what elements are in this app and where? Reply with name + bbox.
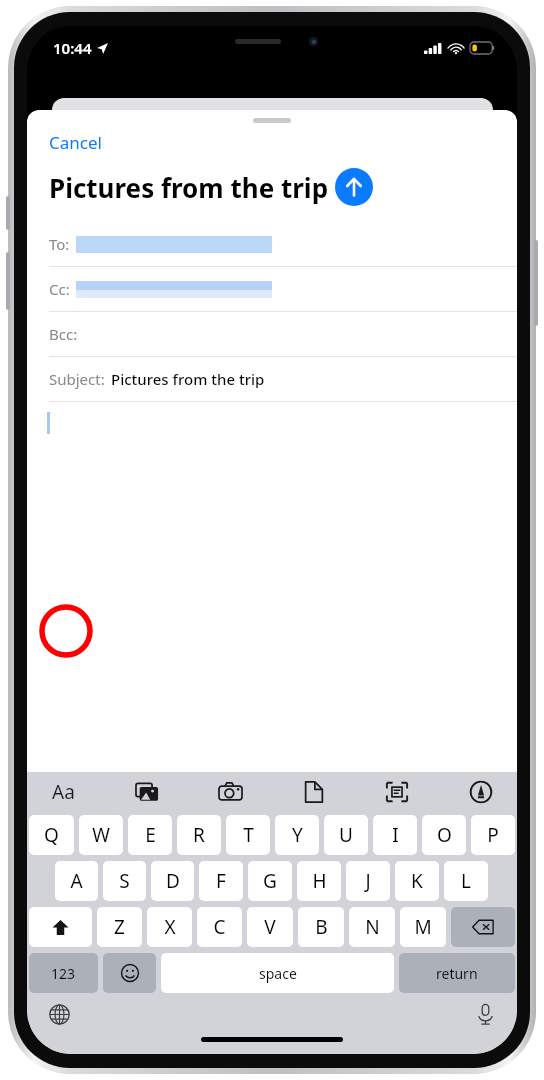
button[interactable]: Photo library	[121, 773, 173, 811]
button[interactable]: space	[161, 953, 394, 993]
staticText: V	[264, 914, 276, 940]
button[interactable]: Markup	[455, 773, 507, 811]
button[interactable]: H	[297, 861, 341, 901]
staticText: Subject:	[49, 369, 105, 389]
staticText: space	[259, 964, 297, 983]
button[interactable]: P	[471, 815, 515, 855]
staticText: Z	[114, 914, 125, 940]
staticText: X	[164, 914, 176, 940]
button[interactable]: Q	[29, 815, 74, 855]
button[interactable]: I	[373, 815, 417, 855]
staticText: L	[461, 868, 471, 894]
staticText: Y	[292, 822, 303, 848]
button[interactable]: B	[298, 907, 344, 947]
button[interactable]: Y	[275, 815, 319, 855]
button[interactable]: R	[177, 815, 221, 855]
button[interactable]: Emoji	[103, 953, 156, 993]
button[interactable]: To:	[27, 222, 517, 267]
staticText: G	[263, 868, 277, 894]
staticText: P	[487, 822, 499, 848]
button[interactable]: D	[151, 861, 194, 901]
button[interactable]: Shift	[29, 907, 92, 947]
button[interactable]: E	[128, 815, 172, 855]
button[interactable]: K	[395, 861, 439, 901]
staticText: 10:44	[53, 38, 92, 58]
staticText: U	[339, 822, 353, 848]
staticText: J	[365, 868, 371, 894]
staticText: 123	[51, 964, 76, 983]
button[interactable]: Text format	[37, 773, 89, 811]
button[interactable]: F	[199, 861, 243, 901]
staticText: B	[315, 914, 328, 940]
staticText: Q	[44, 822, 59, 848]
staticText: D	[166, 868, 180, 894]
button[interactable]: N	[349, 907, 395, 947]
staticText: W	[92, 822, 110, 848]
staticText: R	[193, 822, 205, 848]
button[interactable]: A	[55, 861, 98, 901]
button[interactable]: X	[147, 907, 192, 947]
button[interactable]: return	[399, 953, 515, 993]
button[interactable]: Cancel	[27, 123, 124, 158]
button[interactable]: Send	[335, 168, 373, 206]
button[interactable]: T	[226, 815, 270, 855]
button[interactable]: Camera	[204, 773, 256, 811]
staticText: A	[70, 868, 83, 894]
button[interactable]: S	[103, 861, 146, 901]
button[interactable]	[27, 402, 517, 772]
button[interactable]: Bcc:	[27, 312, 517, 357]
button[interactable]: L	[444, 861, 488, 901]
staticText: return	[436, 964, 478, 983]
button[interactable]: W	[79, 815, 123, 855]
staticText: Cc:	[49, 279, 70, 299]
button[interactable]: J	[346, 861, 390, 901]
staticText: T	[243, 822, 254, 848]
button[interactable]: Subject:	[27, 357, 517, 402]
button[interactable]: M	[400, 907, 446, 947]
staticText: I	[392, 822, 399, 848]
staticText: Aa	[52, 779, 75, 805]
button[interactable]: Dictate	[469, 998, 501, 1030]
staticText: H	[312, 868, 327, 894]
staticText: M	[414, 914, 432, 940]
staticText: N	[365, 914, 380, 940]
button[interactable]: U	[324, 815, 368, 855]
button[interactable]: Scan document	[371, 773, 423, 811]
button[interactable]: Switch keyboard	[43, 998, 75, 1030]
staticText: Pictures from the trip	[111, 369, 265, 389]
button[interactable]: G	[248, 861, 292, 901]
button[interactable]: Cc:	[27, 267, 517, 312]
button[interactable]: V	[247, 907, 293, 947]
button[interactable]: O	[422, 815, 466, 855]
button[interactable]: C	[197, 907, 242, 947]
staticText: Cancel	[49, 131, 102, 154]
staticText: Bcc:	[49, 324, 78, 344]
button[interactable]: 123	[29, 953, 98, 993]
staticText: O	[437, 822, 452, 848]
staticText: C	[213, 914, 226, 940]
staticText: Pictures from the trip	[49, 170, 329, 205]
button[interactable]: Backspace	[451, 907, 515, 947]
staticText: S	[119, 868, 130, 894]
staticText: F	[216, 868, 226, 894]
staticText: K	[411, 868, 423, 894]
button[interactable]: Z	[97, 907, 142, 947]
staticText: To:	[49, 234, 70, 254]
staticText: E	[145, 822, 156, 848]
button[interactable]: Attach document	[288, 773, 340, 811]
